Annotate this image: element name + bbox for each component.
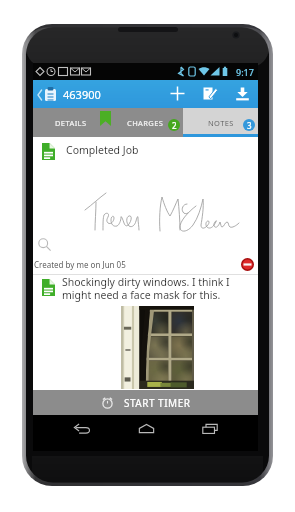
button[interactable]: Edit: [197, 80, 223, 106]
button[interactable]: CHARGES: [108, 108, 183, 137]
staticText: CHARGES: [127, 118, 164, 128]
staticText: 2: [172, 120, 177, 131]
staticText: Completed Job: [66, 143, 139, 157]
staticText: 3: [247, 120, 252, 131]
staticText: Created by me on Jun 05: [34, 259, 126, 270]
button[interactable]: START TIMER: [33, 390, 258, 415]
staticText: Shockingly dirty windows. I think I migh…: [62, 275, 230, 302]
staticText: START TIMER: [124, 396, 191, 410]
staticText: NOTES: [208, 118, 234, 128]
button[interactable]: [33, 275, 258, 385]
button[interactable]: Back to list: [33, 87, 59, 102]
staticText: 463900: [63, 87, 101, 102]
button[interactable]: DETAILS: [33, 108, 108, 137]
staticText: 9:17: [236, 66, 254, 78]
button[interactable]: Download: [229, 80, 255, 106]
button[interactable]: Delete note: [241, 258, 254, 271]
button[interactable]: Add: [164, 80, 190, 106]
button[interactable]: Back: [66, 418, 98, 440]
staticText: DETAILS: [55, 118, 87, 128]
button[interactable]: [33, 137, 258, 274]
button[interactable]: Recent apps: [194, 418, 226, 440]
button[interactable]: NOTES: [183, 108, 258, 137]
button[interactable]: Home: [130, 418, 162, 440]
